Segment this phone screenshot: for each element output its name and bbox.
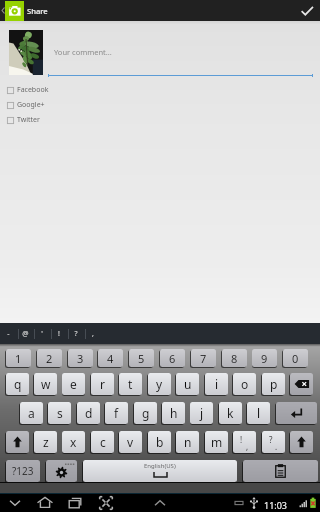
button[interactable]: Facebook — [5, 83, 95, 97]
button[interactable]: ? — [262, 431, 285, 453]
staticText: Share — [27, 6, 48, 16]
staticText: w — [41, 376, 51, 392]
staticText: Google+ — [17, 100, 45, 110]
button[interactable]: x — [62, 431, 85, 453]
button[interactable]: s — [48, 402, 71, 424]
staticText: 7 — [200, 351, 207, 366]
button[interactable]: a — [20, 402, 43, 424]
button[interactable]: Recents — [65, 494, 85, 512]
button[interactable]: j — [190, 402, 213, 424]
button[interactable]: Twitter — [5, 113, 95, 127]
button[interactable]: 6 — [160, 349, 185, 367]
button[interactable]: Back — [5, 494, 25, 512]
staticText: ! — [240, 434, 243, 445]
staticText: 2 — [46, 351, 53, 366]
staticText: ?123 — [12, 464, 34, 478]
button[interactable]: 8 — [222, 349, 247, 367]
staticText: m — [211, 434, 223, 450]
button[interactable]: Backspace — [290, 373, 313, 395]
button[interactable]: w — [34, 373, 57, 395]
staticText: 9 — [261, 351, 268, 366]
staticText: z — [43, 434, 49, 450]
button[interactable]: e — [62, 373, 85, 395]
button[interactable]: 1 — [6, 349, 31, 367]
staticText: h — [170, 405, 178, 421]
button[interactable]: 7 — [191, 349, 216, 367]
button[interactable]: Enter — [276, 402, 317, 424]
button[interactable]: y — [148, 373, 171, 395]
staticText: - — [7, 329, 10, 339]
staticText: y — [156, 376, 163, 392]
button[interactable]: Screenshot — [96, 494, 116, 512]
button[interactable]: o — [233, 373, 256, 395]
button[interactable]: Done — [297, 0, 319, 21]
staticText: d — [85, 405, 93, 421]
button[interactable]: 4 — [98, 349, 123, 367]
button[interactable]: Shift — [290, 431, 313, 453]
button[interactable]: Expand — [150, 494, 170, 512]
staticText: ! — [58, 329, 60, 339]
button[interactable]: f — [105, 402, 128, 424]
button[interactable]: ! — [233, 431, 256, 453]
button[interactable]: @ — [17, 323, 33, 344]
button[interactable]: ? — [68, 323, 84, 344]
staticText: 3 — [77, 351, 84, 366]
staticText: ? — [269, 434, 273, 445]
button[interactable]: q — [6, 373, 29, 395]
staticText: Your comment... — [54, 47, 112, 57]
staticText: 5 — [138, 351, 145, 366]
button[interactable]: App icon — [5, 1, 24, 21]
button[interactable]: Home — [35, 494, 55, 512]
button[interactable]: ! — [51, 323, 67, 344]
staticText: 0 — [292, 351, 299, 366]
button[interactable]: - — [0, 323, 16, 344]
button[interactable]: Google+ — [5, 98, 95, 112]
button[interactable]: 0 — [283, 349, 308, 367]
button[interactable]: c — [91, 431, 114, 453]
staticText: Twitter — [17, 115, 40, 125]
button[interactable]: 3 — [68, 349, 93, 367]
button[interactable]: Space — [83, 460, 237, 482]
button[interactable]: ?123 — [6, 460, 40, 482]
button[interactable]: d — [77, 402, 100, 424]
button[interactable]: k — [219, 402, 242, 424]
button[interactable]: ' — [34, 323, 50, 344]
staticText: 8 — [231, 351, 238, 366]
staticText: 11:03 — [264, 499, 288, 511]
staticText: k — [227, 405, 234, 421]
button[interactable]: 9 — [252, 349, 277, 367]
staticText: , — [246, 441, 249, 452]
staticText: Facebook — [17, 85, 49, 95]
staticText: c — [100, 434, 106, 450]
staticText: , — [92, 329, 94, 339]
button[interactable]: 2 — [37, 349, 62, 367]
button[interactable]: h — [162, 402, 185, 424]
button[interactable]: b — [148, 431, 171, 453]
button[interactable]: l — [247, 402, 270, 424]
button[interactable]: n — [176, 431, 199, 453]
staticText: p — [270, 376, 278, 392]
button[interactable]: i — [205, 373, 228, 395]
staticText: ? — [74, 329, 78, 339]
staticText: English(US) — [144, 462, 176, 470]
staticText: q — [14, 376, 22, 392]
button[interactable]: , — [85, 323, 101, 344]
staticText: l — [257, 405, 261, 421]
button[interactable]: t — [119, 373, 142, 395]
button[interactable]: u — [176, 373, 199, 395]
button[interactable]: r — [91, 373, 114, 395]
button[interactable]: Shift — [6, 431, 29, 453]
button[interactable]: g — [134, 402, 157, 424]
button[interactable]: p — [262, 373, 285, 395]
staticText: v — [127, 434, 134, 450]
staticText: g — [142, 405, 150, 421]
button[interactable]: Photo thumbnail — [9, 30, 43, 75]
button[interactable]: 5 — [129, 349, 154, 367]
button[interactable]: m — [205, 431, 228, 453]
staticText: 1 — [15, 351, 22, 366]
button[interactable]: Settings — [46, 460, 77, 482]
button[interactable]: Clipboard — [243, 460, 318, 482]
button[interactable]: v — [119, 431, 142, 453]
staticText: u — [184, 376, 192, 392]
button[interactable]: z — [34, 431, 57, 453]
